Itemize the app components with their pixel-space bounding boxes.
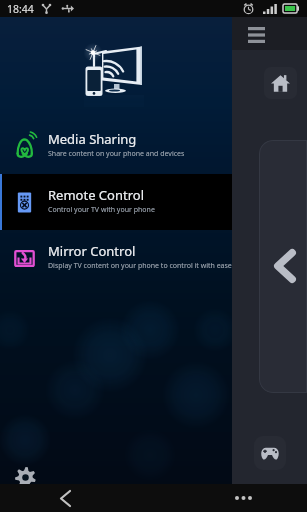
staticText: Mirror Control [48, 242, 136, 260]
button[interactable]: Previous [259, 140, 307, 393]
button[interactable]: Recents [228, 484, 258, 512]
button[interactable]: Media Sharing [0, 118, 232, 174]
button[interactable]: Back [50, 484, 80, 512]
button[interactable]: Games [254, 436, 286, 470]
staticText: Media Sharing [48, 130, 137, 148]
staticText: Remote Control [48, 186, 144, 204]
staticText: Share content on your phone and devices [48, 149, 185, 159]
staticText: Control your TV with your phone [48, 205, 155, 215]
staticText: 18:44 [7, 2, 34, 16]
button[interactable]: Home [264, 67, 297, 99]
button[interactable]: Settings [10, 462, 40, 492]
staticText: Display TV content on your phone to cont… [48, 261, 232, 271]
button[interactable]: Menu [244, 23, 268, 46]
button[interactable]: Mirror Control [0, 230, 232, 286]
button[interactable]: Remote Control [0, 174, 232, 230]
